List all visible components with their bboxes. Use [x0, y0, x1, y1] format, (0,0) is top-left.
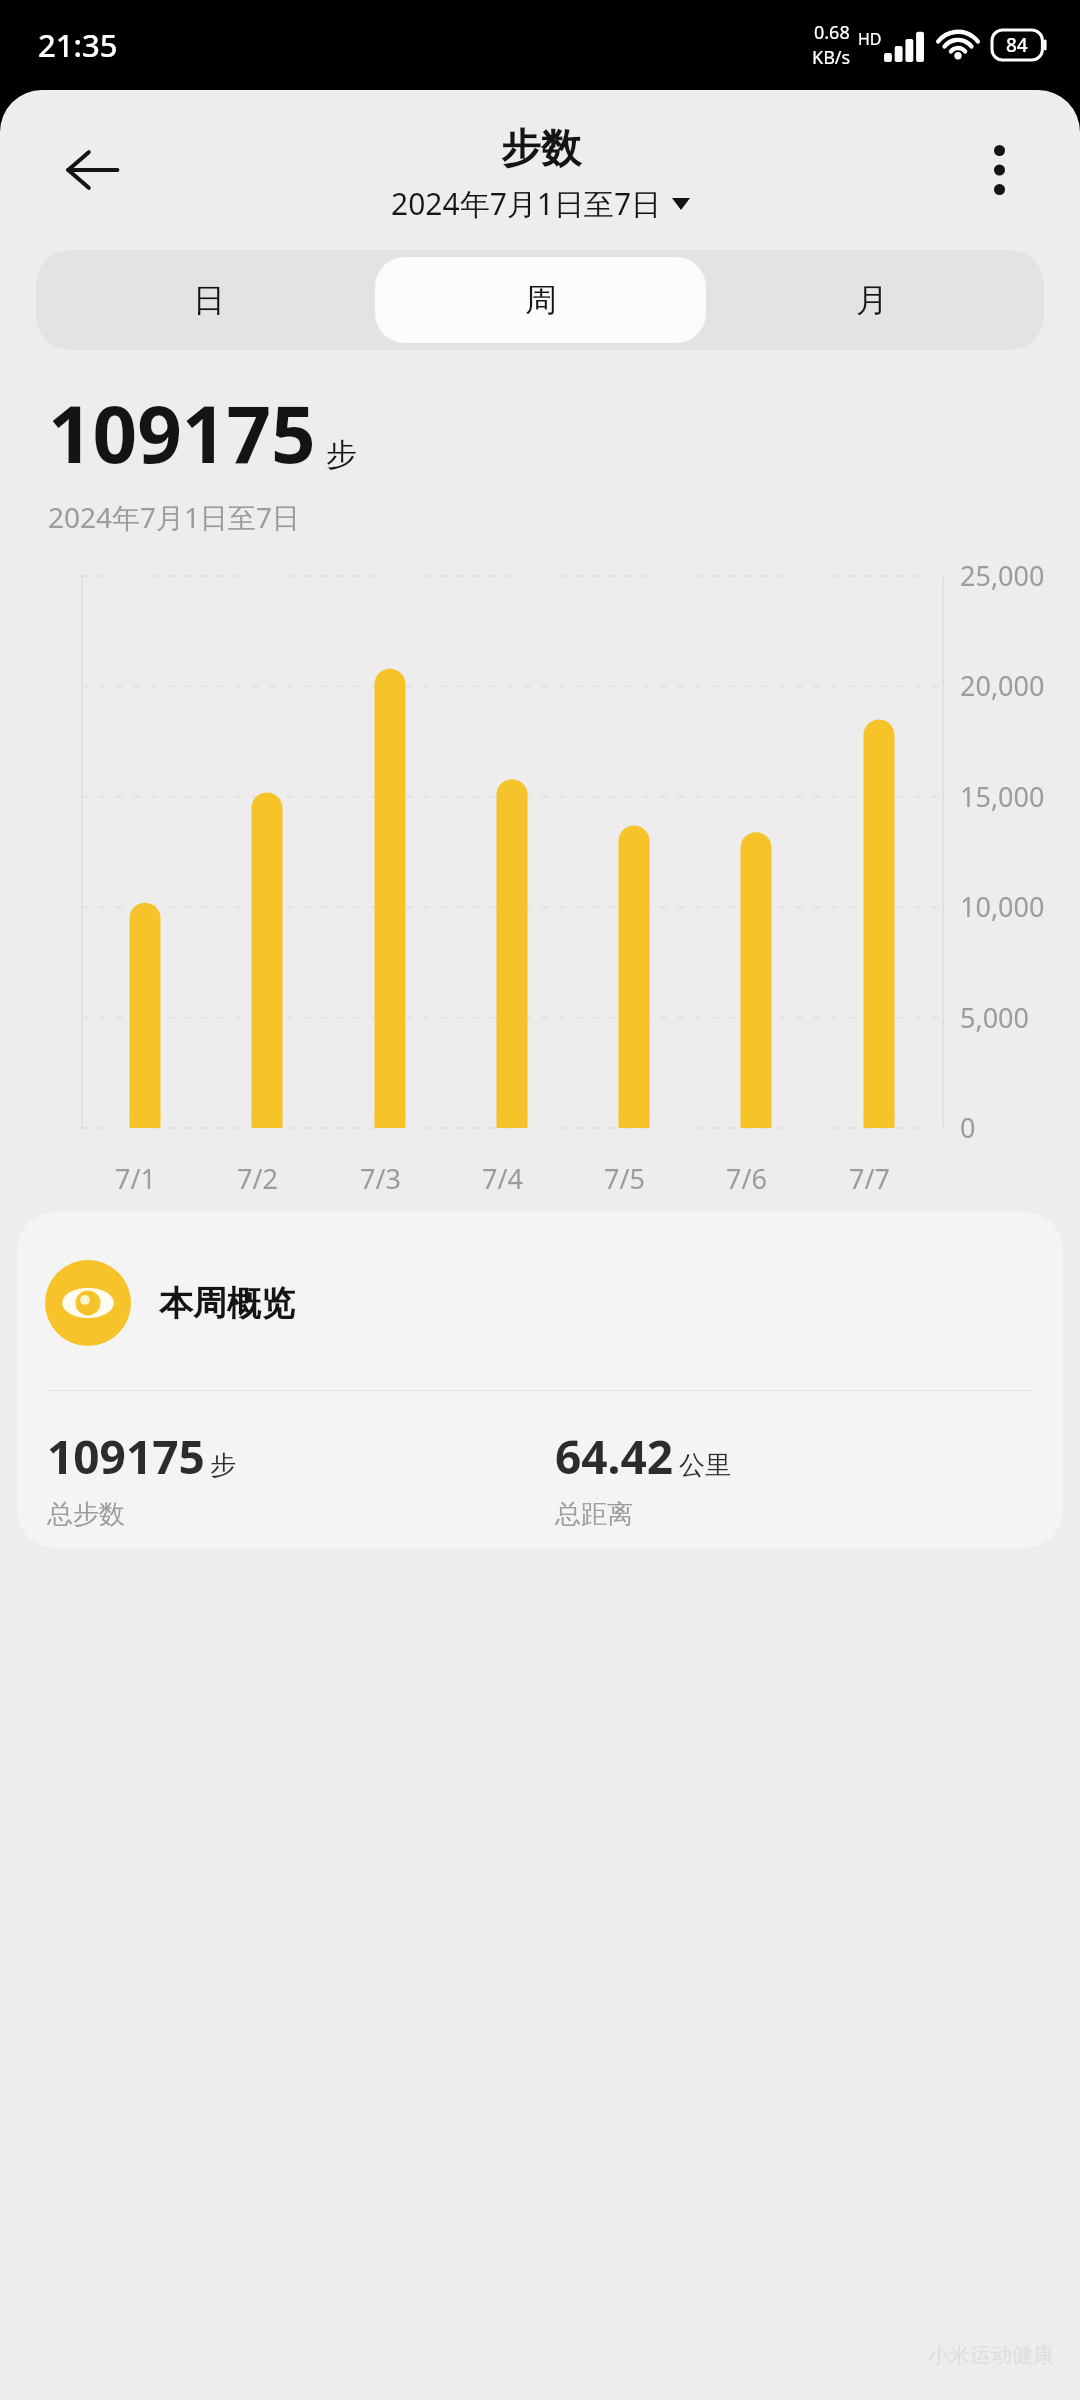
staticText: 0.68 [814, 20, 850, 45]
staticText: 5,000 [960, 999, 1030, 1036]
staticText: 总距离 [555, 1498, 633, 1531]
staticText: 7/7 [849, 1160, 890, 1197]
button[interactable]: 周 [375, 257, 706, 343]
staticText: 步数 [501, 123, 581, 173]
staticText: 7/3 [360, 1160, 401, 1197]
staticText: 公里 [679, 1449, 731, 1482]
staticText: 本周概览 [159, 1282, 295, 1325]
staticText: KB/s [812, 45, 851, 70]
button[interactable]: More options [956, 127, 1042, 213]
staticText: 周 [525, 280, 557, 320]
staticText: 10,000 [960, 888, 1045, 925]
button[interactable]: 2024年7月1日至7日 [385, 181, 696, 226]
staticText: 7/6 [726, 1160, 767, 1197]
staticText: 7/1 [115, 1160, 156, 1197]
staticText: 月 [856, 280, 888, 320]
button[interactable]: 日 [43, 257, 375, 343]
staticText: 0 [960, 1109, 976, 1146]
staticText: 15,000 [960, 778, 1045, 815]
staticText: 7/2 [237, 1160, 278, 1197]
staticText: 日 [193, 280, 225, 320]
staticText: HD [858, 28, 882, 50]
staticText: 64.42 [555, 1425, 674, 1488]
button[interactable]: 本周概览 [17, 1212, 1063, 1548]
staticText: 步 [210, 1449, 236, 1482]
staticText: 21:35 [38, 24, 118, 66]
staticText: 109175 [48, 380, 316, 486]
staticText: 20,000 [960, 667, 1045, 704]
staticText: 总步数 [47, 1498, 125, 1531]
button[interactable]: Back [44, 122, 140, 218]
staticText: 109175 [47, 1425, 205, 1488]
staticText: 2024年7月1日至7日 [391, 183, 662, 224]
staticText: 步 [326, 435, 357, 474]
staticText: 25,000 [960, 557, 1045, 594]
staticText: 7/5 [604, 1160, 645, 1197]
staticText: 2024年7月1日至7日 [48, 498, 301, 536]
staticText: 小米运动健康 [928, 2342, 1054, 2368]
button[interactable]: 月 [706, 257, 1037, 343]
staticText: 7/4 [482, 1160, 523, 1197]
staticText: 84 [1006, 32, 1028, 58]
